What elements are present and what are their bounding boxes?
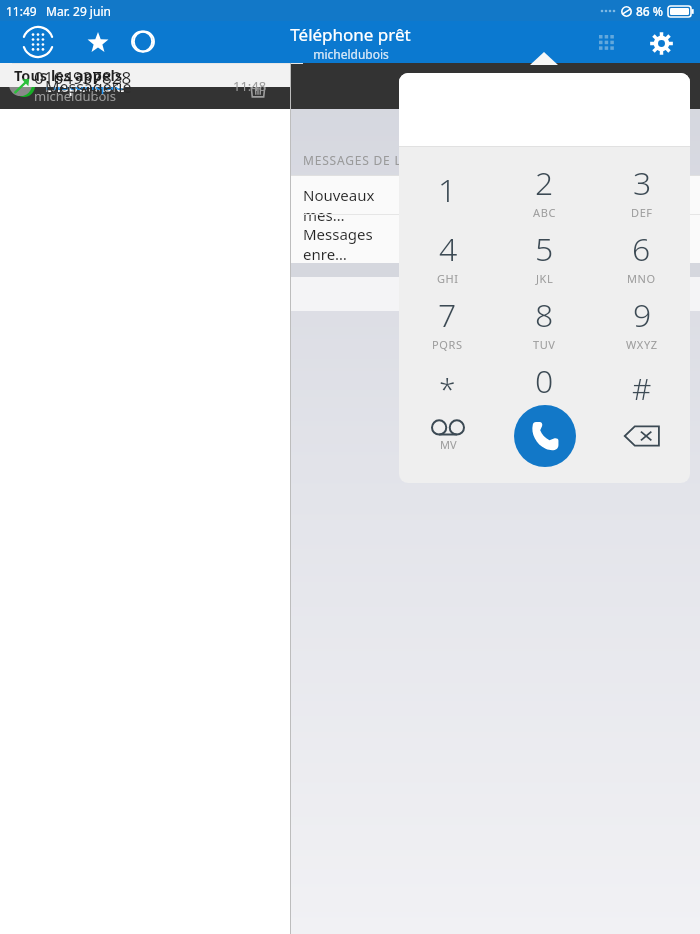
staticText: GHI <box>437 271 459 286</box>
staticText: 6 <box>632 227 651 271</box>
staticText: WXYZ <box>626 337 658 352</box>
button[interactable]: 0 <box>496 355 593 421</box>
button[interactable]: Nouveaux mes… <box>291 175 401 224</box>
staticText: Téléphone prêt <box>290 23 411 46</box>
staticText: 11:49 Mar. 29 juin <box>6 3 111 19</box>
button[interactable] <box>0 63 291 106</box>
button[interactable] <box>399 73 690 146</box>
button[interactable]: Favorites <box>82 27 114 59</box>
staticText: # <box>632 368 652 409</box>
button[interactable]: Contacts <box>0 63 291 105</box>
button[interactable]: 3 <box>593 157 690 223</box>
staticText: + <box>541 403 548 418</box>
button[interactable]: 1 <box>399 157 496 223</box>
staticText: 2 <box>535 161 554 205</box>
button[interactable] <box>0 63 291 106</box>
button[interactable]: Keypad panel <box>592 28 623 59</box>
button[interactable] <box>0 63 291 106</box>
staticText: 9 <box>633 293 652 337</box>
button[interactable] <box>0 63 291 106</box>
staticText: * <box>439 368 456 409</box>
button[interactable]: 9 <box>593 289 690 355</box>
button[interactable]: 6 <box>593 223 690 289</box>
button[interactable] <box>0 63 291 106</box>
button[interactable]: Voicemail <box>127 27 159 59</box>
staticText: MV <box>440 437 457 452</box>
button[interactable] <box>0 63 291 106</box>
button[interactable]: Backspace <box>593 405 690 467</box>
staticText: 0 <box>535 359 554 403</box>
staticText: PQRS <box>432 337 463 352</box>
staticText: micheldubois <box>313 46 389 62</box>
button[interactable]: 5 <box>496 223 593 289</box>
staticText: Messages enre… <box>303 224 413 264</box>
staticText: Disponible <box>45 75 126 97</box>
button[interactable]: 7 <box>399 289 496 355</box>
staticText: 3 <box>633 161 652 205</box>
button[interactable]: 0164937828 <box>0 63 291 106</box>
button[interactable]: Disponible <box>0 63 291 109</box>
staticText: DEF <box>631 205 653 220</box>
button[interactable]: Historique <box>0 63 291 105</box>
staticText: Historique <box>45 73 124 95</box>
staticText: micheldubois <box>34 87 116 105</box>
button[interactable] <box>0 63 291 106</box>
staticText: 4 <box>439 227 458 271</box>
button[interactable]: 8 <box>496 289 593 355</box>
button[interactable]: Messagerie <box>0 63 291 111</box>
staticText: Tous les appels <box>14 65 123 85</box>
staticText: TUV <box>533 337 556 352</box>
staticText: Nouveaux mes… <box>303 185 413 225</box>
staticText: 11:48 <box>233 77 267 95</box>
button[interactable]: Voicemail <box>399 405 496 467</box>
staticText: 86 % <box>636 3 664 19</box>
button[interactable]: 4 <box>399 223 496 289</box>
staticText: MNO <box>627 271 656 286</box>
staticText: 5 <box>535 227 554 271</box>
staticText: 0164937828 <box>34 66 132 89</box>
button[interactable] <box>0 63 291 106</box>
staticText: Messagerie <box>45 76 132 98</box>
button[interactable]: Delete history <box>241 70 275 104</box>
staticText: 8 <box>535 293 554 337</box>
button[interactable] <box>0 63 291 106</box>
button[interactable]: Settings <box>645 27 678 60</box>
staticText: 7 <box>438 293 457 337</box>
button[interactable]: Dialpad <box>20 24 56 60</box>
button[interactable] <box>0 63 291 106</box>
button[interactable]: 2 <box>496 157 593 223</box>
button[interactable]: Messages enre… <box>291 215 401 263</box>
staticText: Contacts <box>45 73 111 95</box>
button[interactable]: * <box>399 355 496 421</box>
button[interactable]: # <box>593 355 690 421</box>
staticText: ABC <box>533 205 556 220</box>
button[interactable] <box>0 63 291 106</box>
staticText: JKL <box>536 271 554 286</box>
staticText: 1 <box>438 168 457 212</box>
button[interactable]: Call <box>514 405 576 467</box>
button[interactable] <box>0 63 291 106</box>
staticText: MESSAGES DE L… <box>303 152 412 168</box>
button[interactable] <box>0 63 291 106</box>
button[interactable] <box>0 63 291 106</box>
